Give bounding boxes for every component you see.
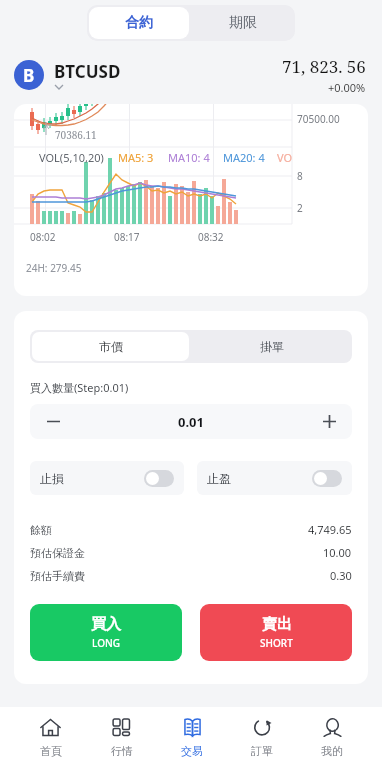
staticText: 止盈: [207, 471, 231, 486]
button[interactable]: 買入: [30, 604, 182, 661]
staticText: 行情: [111, 744, 133, 758]
button[interactable]: 賣出: [200, 604, 352, 661]
staticText: 買入: [91, 615, 121, 634]
button[interactable]: 訂單: [227, 707, 297, 767]
staticText: 餘額: [30, 523, 52, 537]
staticText: 賣出: [262, 615, 292, 634]
button[interactable]: 首頁: [15, 707, 86, 767]
staticText: 市價: [99, 339, 123, 354]
staticText: 08:32: [198, 230, 224, 244]
button[interactable]: 市價: [32, 332, 189, 361]
staticText: +0.00%: [328, 80, 366, 95]
button[interactable]: 止損: [30, 461, 184, 495]
staticText: BTCUSD: [54, 60, 121, 83]
staticText: 70386.11: [55, 128, 97, 142]
staticText: 0.01: [178, 413, 204, 431]
staticText: 首頁: [40, 744, 62, 758]
staticText: MA10: 4: [168, 150, 210, 165]
staticText: 期限: [229, 14, 257, 32]
staticText: VO: [277, 150, 293, 165]
staticText: 70500.00: [297, 112, 340, 126]
staticText: 訂單: [251, 744, 273, 758]
button[interactable]: BTCUSD: [54, 60, 121, 90]
button[interactable]: 掛單: [191, 330, 352, 363]
staticText: 2: [297, 201, 303, 215]
button[interactable]: 合約: [89, 7, 189, 39]
staticText: 08:17: [114, 230, 140, 244]
staticText: 71, 823. 56: [282, 55, 366, 78]
button[interactable]: 期限: [191, 5, 295, 41]
button[interactable]: 交易: [157, 707, 227, 767]
staticText: 10.00: [323, 545, 352, 560]
staticText: 買入數量(Step:0.01): [30, 380, 129, 395]
button[interactable]: Decrease quantity: [30, 404, 76, 439]
staticText: 08:02: [30, 230, 56, 244]
staticText: B: [23, 64, 35, 87]
staticText: LONG: [92, 636, 121, 650]
staticText: 合約: [125, 14, 153, 32]
button[interactable]: 我的: [297, 707, 367, 767]
staticText: MA20: 4: [223, 150, 265, 165]
staticText: 我的: [321, 744, 343, 758]
staticText: 交易: [181, 744, 203, 758]
staticText: 4,749.65: [308, 522, 352, 537]
staticText: 掛單: [260, 339, 284, 354]
button[interactable]: Increase quantity: [306, 404, 352, 439]
staticText: MA5: 3: [118, 150, 154, 165]
staticText: VOL(5,10,20): [39, 150, 104, 165]
staticText: 預估手續費: [30, 569, 85, 583]
staticText: 24H: 279.45: [26, 261, 82, 275]
staticText: 8: [297, 169, 303, 183]
staticText: 預估保證金: [30, 546, 85, 560]
staticText: SHORT: [260, 636, 293, 650]
staticText: 止損: [40, 471, 64, 486]
staticText: 0.30: [330, 568, 352, 583]
button[interactable]: 行情: [86, 707, 157, 767]
button[interactable]: 止盈: [197, 461, 352, 495]
